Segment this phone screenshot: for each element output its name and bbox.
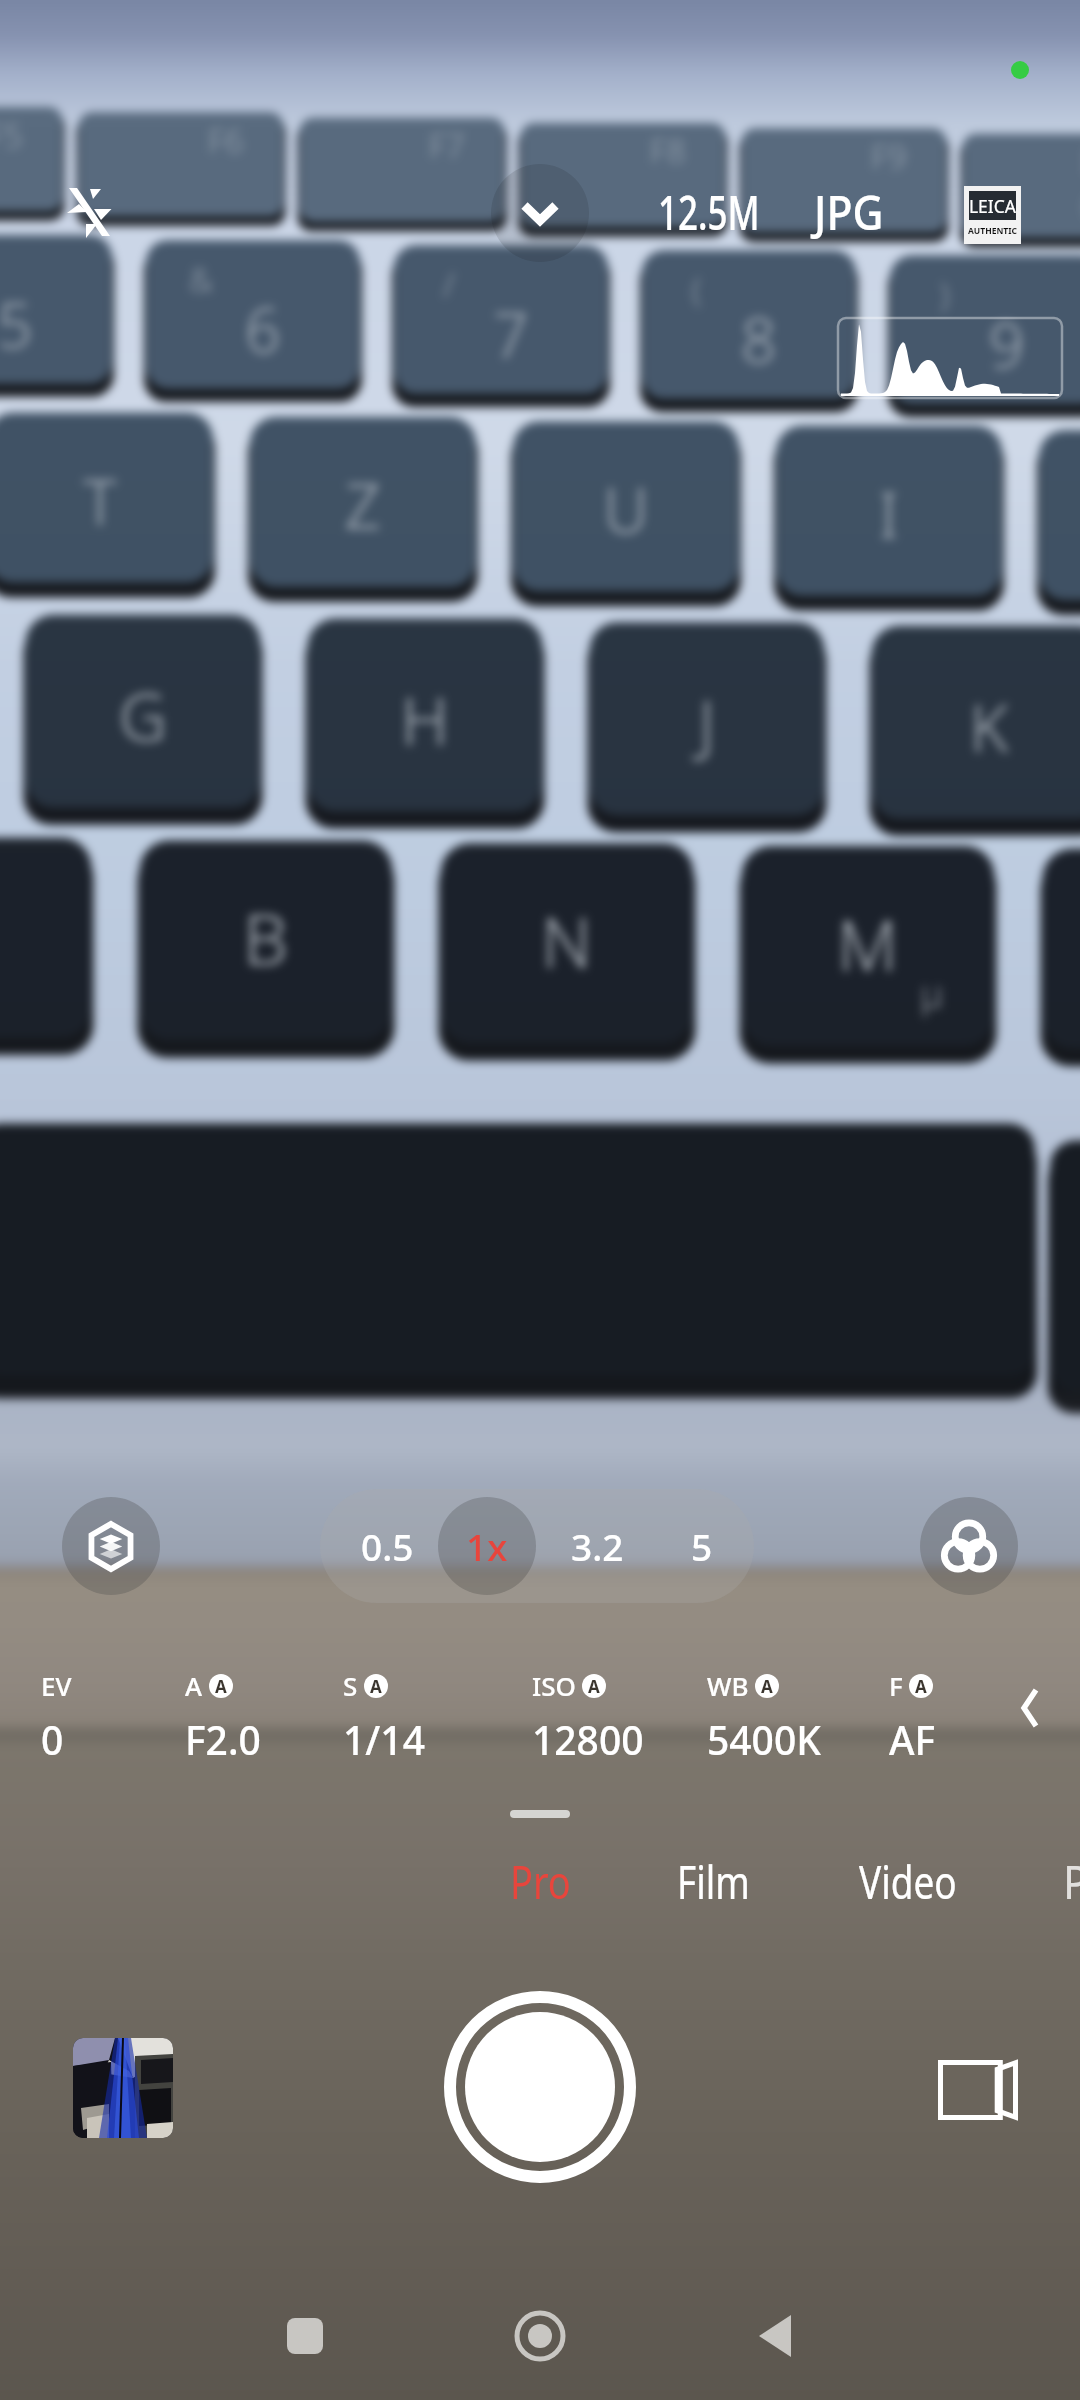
staticText: 12800 [532,1713,644,1766]
staticText: A [370,1675,382,1698]
button[interactable]: 1x [438,1489,536,1603]
button[interactable] [819,1844,997,1914]
button[interactable]: 0.5 [331,1489,443,1603]
button[interactable]: Home [494,2290,586,2382]
button[interactable]: Recent apps [259,2290,351,2382]
staticText: S [343,1668,358,1703]
button[interactable]: More pro controls [1008,1686,1052,1730]
staticText: A [588,1675,600,1698]
staticText: A [215,1675,227,1698]
button[interactable]: S [343,1668,425,1766]
button[interactable]: EV [41,1668,72,1766]
staticText: 0 [41,1713,64,1766]
staticText: 3.2 [571,1521,624,1571]
staticText: 5400K [707,1713,821,1766]
button[interactable]: Flash off [58,182,120,244]
button[interactable] [470,1844,611,1914]
staticText: A [185,1668,203,1703]
button[interactable]: Shutter [440,1987,640,2187]
button[interactable]: Lens mode [62,1497,160,1595]
staticText: 0.5 [361,1521,414,1571]
button[interactable]: F [889,1668,936,1766]
button[interactable]: Back [729,2290,821,2382]
staticText: F2.0 [185,1713,261,1766]
staticText: F [889,1668,903,1703]
button[interactable]: 5 [652,1489,752,1603]
button[interactable] [806,178,926,242]
button[interactable] [650,178,810,242]
button[interactable]: ISO [532,1668,644,1766]
button[interactable]: More settings [491,164,589,262]
button[interactable] [1023,1844,1080,1914]
button[interactable]: Gallery [73,2038,173,2138]
staticText: 1/14 [343,1713,425,1766]
button[interactable]: WB [707,1668,821,1766]
button[interactable]: Filters [920,1497,1018,1595]
staticText: WB [707,1668,749,1703]
button[interactable]: Leica Authentic [964,186,1021,244]
button[interactable]: Switch to video [918,2030,1038,2150]
staticText: A [761,1675,773,1698]
staticText: EV [41,1668,72,1703]
staticText: ISO [532,1668,576,1703]
staticText: 1x [466,1521,508,1571]
button[interactable]: 3.2 [542,1489,652,1603]
button[interactable] [637,1844,790,1914]
staticText: AF [889,1713,936,1766]
button[interactable]: A [185,1668,261,1766]
staticText: A [915,1675,927,1698]
staticText: 5 [691,1521,713,1571]
